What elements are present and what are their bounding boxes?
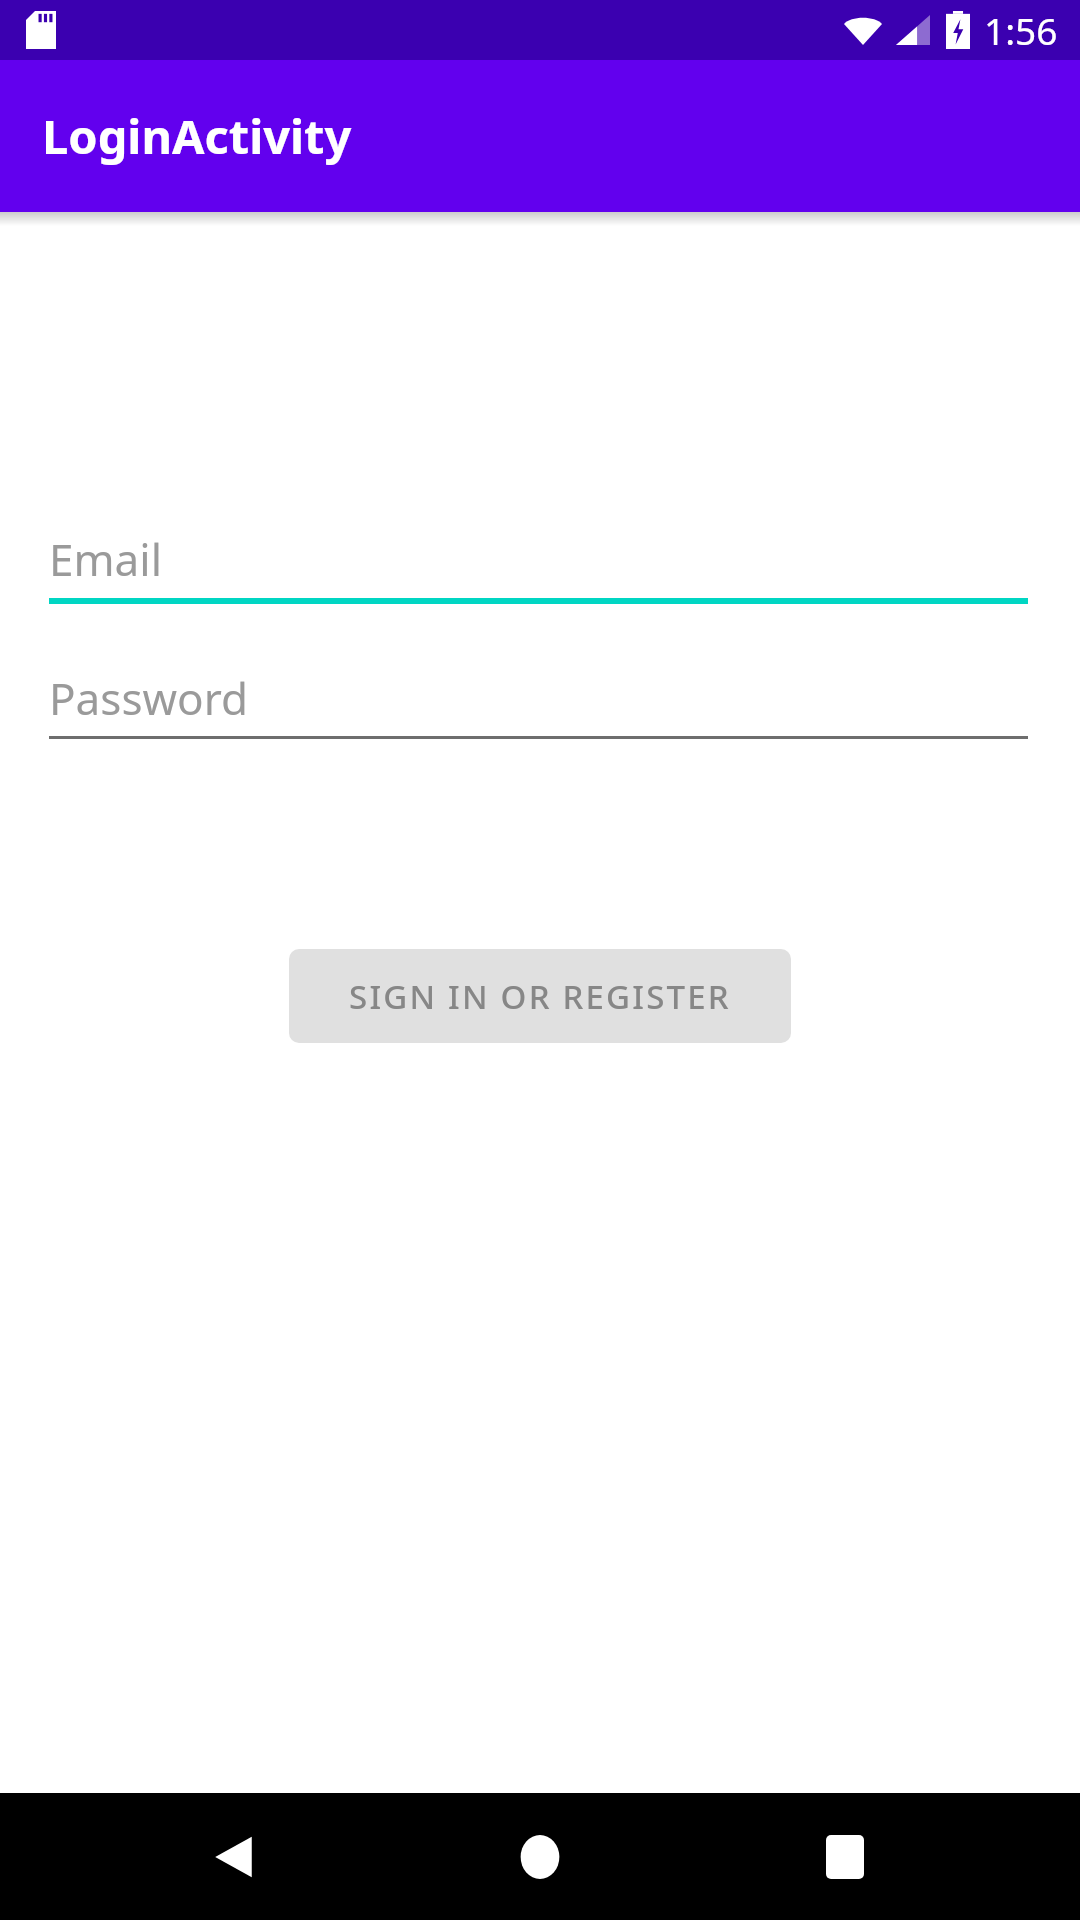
staticText: Password: [49, 668, 249, 728]
staticText: SIGN IN OR REGISTER: [349, 974, 731, 1019]
button[interactable]: Back: [180, 1802, 290, 1912]
button[interactable]: Home: [485, 1802, 595, 1912]
staticText: Email: [49, 529, 162, 589]
button[interactable]: Password: [49, 660, 1028, 739]
staticText: 1:56: [984, 5, 1058, 55]
button[interactable]: Recent apps: [790, 1802, 900, 1912]
button[interactable]: Email: [49, 520, 1028, 604]
button[interactable]: SIGN IN OR REGISTER: [289, 949, 791, 1043]
staticText: LoginActivity: [42, 104, 352, 168]
